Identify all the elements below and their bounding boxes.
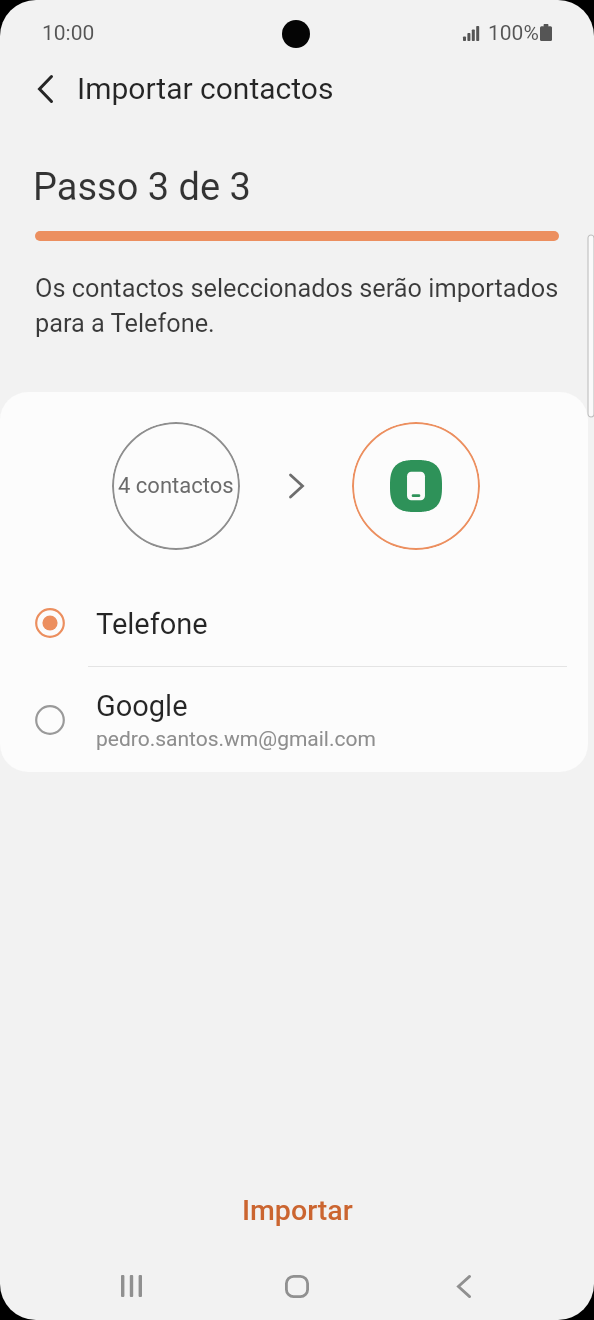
- staticText: Importar contactos: [77, 71, 334, 106]
- button[interactable]: Recents: [65, 1253, 197, 1319]
- staticText: para a Telefone.: [35, 309, 215, 339]
- button[interactable]: Telefone: [0, 580, 588, 665]
- button[interactable]: Home: [231, 1253, 363, 1319]
- staticText: pedro.santos.wm@gmail.com: [96, 727, 376, 752]
- staticText: Importar: [242, 1194, 353, 1227]
- button[interactable]: Back: [23, 67, 67, 111]
- staticText: 100%: [488, 21, 539, 46]
- button[interactable]: Google: [0, 668, 588, 772]
- button[interactable]: Importar: [0, 1167, 594, 1253]
- staticText: Telefone: [96, 607, 208, 641]
- button[interactable]: Back: [398, 1253, 530, 1319]
- staticText: Google: [96, 689, 188, 723]
- staticText: 10:00: [42, 21, 95, 46]
- staticText: 4 contactos: [118, 473, 234, 499]
- staticText: Os contactos seleccionados serão importa…: [35, 274, 559, 304]
- staticText: Passo 3 de 3: [33, 165, 251, 210]
